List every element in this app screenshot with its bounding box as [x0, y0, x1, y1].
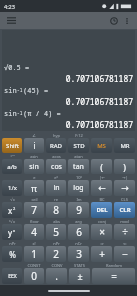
button[interactable]: ÷ — [114, 224, 135, 240]
staticText: arg — [75, 219, 82, 224]
staticText: CLR — [119, 206, 131, 214]
staticText: 4:23 — [4, 3, 15, 10]
staticText: abs — [53, 219, 60, 224]
staticText: Shift — [6, 142, 19, 150]
staticText: → — [121, 183, 129, 193]
staticText: x — [13, 228, 16, 233]
staticText: ⇐ — [123, 241, 127, 246]
staticText: F:12 — [75, 133, 83, 138]
button[interactable]: log — [68, 180, 89, 196]
button[interactable]: 1/x — [2, 180, 22, 196]
staticText: ÷ — [122, 225, 128, 239]
staticText: . — [55, 269, 58, 283]
button[interactable]: 4 — [24, 224, 44, 240]
staticText: CONV — [51, 263, 63, 268]
staticText: floor — [30, 219, 39, 224]
staticText: hyp — [53, 133, 60, 138]
button[interactable]: History — [106, 13, 121, 28]
staticText: STD — [73, 142, 85, 150]
staticText: -1 — [17, 110, 23, 116]
staticText: →| — [122, 175, 128, 180]
button[interactable]: 8 — [46, 202, 66, 218]
staticText: ← — [98, 183, 106, 193]
staticText: + — [99, 247, 105, 261]
button[interactable]: % — [2, 246, 22, 262]
button[interactable]: π — [24, 180, 44, 196]
staticText: tan — [73, 162, 84, 172]
button[interactable]: DEL — [91, 202, 112, 218]
button[interactable]: Menu — [4, 13, 19, 28]
staticText: CLS — [121, 197, 128, 202]
button[interactable]: . — [46, 268, 67, 284]
button[interactable]: = — [92, 268, 135, 284]
button[interactable]: Shift — [2, 138, 22, 153]
staticText: sin — [4, 109, 17, 119]
button[interactable]: ← — [91, 180, 112, 196]
staticText: nPr — [9, 241, 16, 246]
staticText: x — [8, 205, 13, 216]
staticText: ʸ√x — [9, 219, 15, 224]
button[interactable]: CLR — [114, 202, 135, 218]
staticText: MS — [97, 142, 106, 150]
staticText: − — [122, 247, 128, 261]
staticText: ( — [100, 161, 103, 173]
button[interactable]: × — [91, 224, 112, 240]
button[interactable]: i — [24, 138, 44, 153]
button[interactable]: Home — [48, 290, 90, 292]
staticText: e — [33, 175, 36, 180]
staticText: 0 — [31, 269, 37, 283]
button[interactable]: 0 — [24, 268, 44, 284]
button[interactable]: y — [2, 224, 22, 240]
button[interactable]: a/b — [2, 159, 22, 174]
button[interactable]: → — [114, 180, 135, 196]
staticText: mod — [120, 219, 129, 224]
staticText: asin — [30, 154, 38, 159]
staticText: 1/x — [8, 184, 17, 192]
staticText: 3 — [76, 247, 82, 261]
button[interactable]: + — [91, 246, 112, 262]
staticText: eˣ — [54, 175, 58, 180]
button[interactable]: MR — [114, 138, 135, 153]
staticText: √x — [10, 197, 15, 202]
staticText: 0.707106781187 — [4, 96, 133, 107]
button[interactable]: tan — [68, 159, 89, 174]
button[interactable]: cos — [46, 159, 66, 174]
staticText: 9 — [76, 203, 82, 217]
staticText: ± — [77, 270, 83, 282]
staticText: ∠ — [32, 133, 36, 138]
staticText: acos — [52, 154, 61, 159]
button[interactable]: ± — [69, 268, 90, 284]
staticText: RAD — [50, 142, 62, 150]
staticText: 4 — [31, 225, 37, 239]
button[interactable]: 5 — [46, 224, 66, 240]
button[interactable]: More options — [121, 15, 133, 27]
staticText: STATS — [74, 263, 85, 268]
button[interactable]: ( — [91, 159, 112, 174]
button[interactable]: EEX — [2, 268, 22, 284]
staticText: EEX — [8, 273, 17, 280]
staticText: a/b — [7, 163, 17, 171]
button[interactable]: MS — [91, 138, 112, 153]
button[interactable]: 6 — [68, 224, 89, 240]
staticText: 0.707106781187 — [4, 73, 133, 84]
button[interactable]: STD — [68, 138, 89, 153]
button[interactable]: 2 — [46, 246, 66, 262]
button[interactable]: x — [2, 202, 22, 218]
button[interactable]: RAD — [46, 138, 66, 153]
staticText: BC — [99, 197, 105, 202]
staticText: atan — [74, 154, 83, 159]
button[interactable]: 1 — [24, 246, 44, 262]
button[interactable]: 7 — [24, 202, 44, 218]
staticText: |← — [99, 175, 105, 180]
staticText: y — [8, 227, 13, 238]
button[interactable]: − — [114, 246, 135, 262]
button[interactable]: sin — [24, 159, 44, 174]
staticText: 2 — [13, 206, 16, 211]
button[interactable]: 9 — [68, 202, 89, 218]
button[interactable]: ) — [114, 159, 135, 174]
staticText: ⇒ — [100, 241, 104, 246]
staticText: conj — [98, 219, 106, 224]
button[interactable]: 3 — [68, 246, 89, 262]
button[interactable]: ln — [46, 180, 66, 196]
staticText: (45) = — [23, 86, 49, 96]
